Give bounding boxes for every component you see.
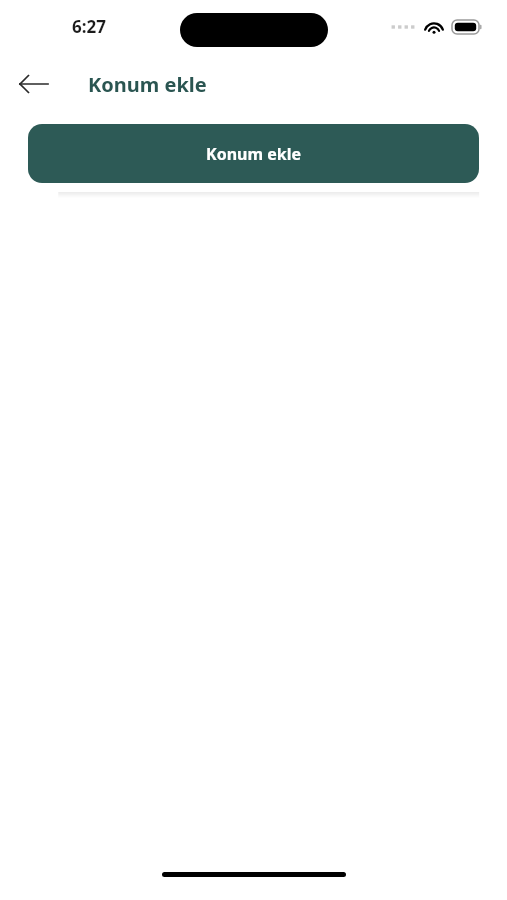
staticText: Konum ekle (88, 71, 207, 98)
button[interactable]: Konum ekle (28, 124, 479, 183)
staticText: 6:27 (72, 15, 106, 38)
staticText: Konum ekle (206, 143, 301, 165)
button[interactable]: Geri (10, 60, 58, 108)
